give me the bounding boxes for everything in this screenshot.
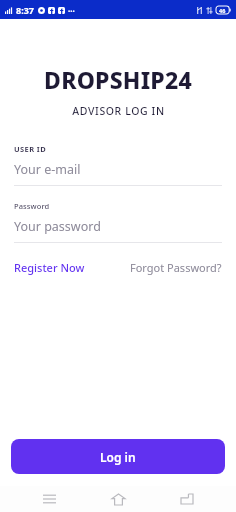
staticText: USER ID bbox=[14, 144, 47, 154]
staticText: Forgot Password? bbox=[130, 260, 222, 275]
staticText: 46 bbox=[219, 7, 226, 14]
button[interactable]: USER ID bbox=[0, 144, 236, 186]
button[interactable]: Forgot Password? bbox=[130, 257, 222, 278]
staticText: DROPSHIP24 bbox=[44, 64, 192, 95]
button[interactable]: Password bbox=[0, 201, 236, 243]
button[interactable]: Recents bbox=[29, 486, 69, 512]
staticText: Your e-mail bbox=[14, 161, 81, 178]
staticText: ADVISOR LOG IN bbox=[72, 104, 165, 118]
button[interactable]: Back bbox=[167, 486, 207, 512]
staticText: Log in bbox=[100, 449, 136, 465]
staticText: 8:37 bbox=[16, 4, 34, 16]
button[interactable]: Home bbox=[98, 486, 138, 512]
button[interactable]: Log in bbox=[11, 439, 225, 474]
button[interactable]: Register Now bbox=[14, 257, 85, 278]
staticText: Password bbox=[14, 201, 50, 211]
staticText: Your password bbox=[14, 218, 101, 235]
staticText: ··· bbox=[68, 5, 75, 16]
staticText: Register Now bbox=[14, 260, 85, 275]
